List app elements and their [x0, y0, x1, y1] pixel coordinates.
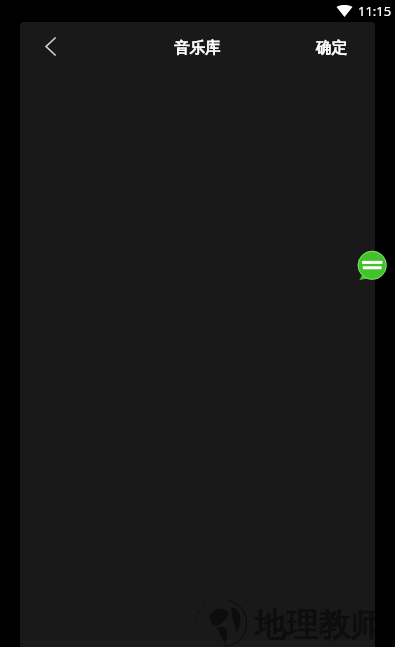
- button[interactable]: Chat: [357, 249, 387, 279]
- button[interactable]: 确定: [300, 28, 375, 68]
- staticText: 地理教师: [254, 605, 375, 645]
- staticText: 11:15: [358, 2, 392, 20]
- staticText: 确定: [316, 38, 347, 58]
- button[interactable]: Back: [33, 31, 67, 65]
- staticText: 音乐库: [174, 38, 221, 58]
